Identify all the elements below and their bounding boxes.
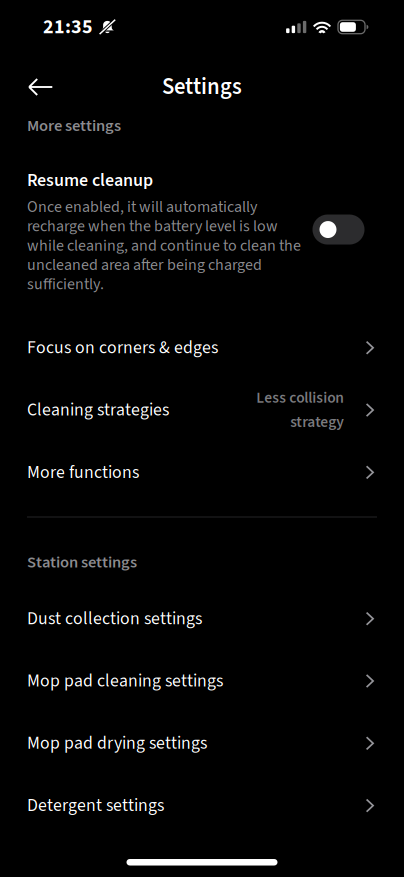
staticText: Less collision strategy bbox=[256, 387, 344, 433]
staticText: Once enabled, it will automatically rech… bbox=[27, 196, 301, 296]
button[interactable]: Mop pad drying settings bbox=[0, 712, 404, 774]
button[interactable]: Mop pad cleaning settings bbox=[0, 650, 404, 712]
button[interactable]: Dust collection settings bbox=[0, 587, 404, 650]
staticText: Resume cleanup bbox=[27, 167, 153, 193]
staticText: Station settings bbox=[27, 550, 137, 574]
staticText: Detergent settings bbox=[27, 793, 164, 818]
staticText: Mop pad drying settings bbox=[27, 731, 207, 756]
button[interactable]: More functions bbox=[0, 441, 404, 503]
button[interactable]: Resume cleanup bbox=[312, 214, 364, 244]
staticText: More settings bbox=[27, 114, 121, 137]
staticText: Mop pad cleaning settings bbox=[27, 668, 223, 694]
button[interactable]: Focus on corners & edges bbox=[0, 317, 404, 379]
staticText: 21:35 bbox=[43, 13, 93, 41]
staticText: Settings bbox=[162, 71, 242, 103]
staticText: More functions bbox=[27, 460, 139, 485]
staticText: Cleaning strategies bbox=[27, 397, 169, 423]
staticText: Focus on corners & edges bbox=[27, 335, 218, 360]
button[interactable]: Detergent settings bbox=[0, 774, 404, 837]
staticText: Dust collection settings bbox=[27, 606, 202, 631]
button[interactable]: Cleaning strategies bbox=[0, 379, 404, 441]
button[interactable]: Back bbox=[15, 65, 66, 109]
